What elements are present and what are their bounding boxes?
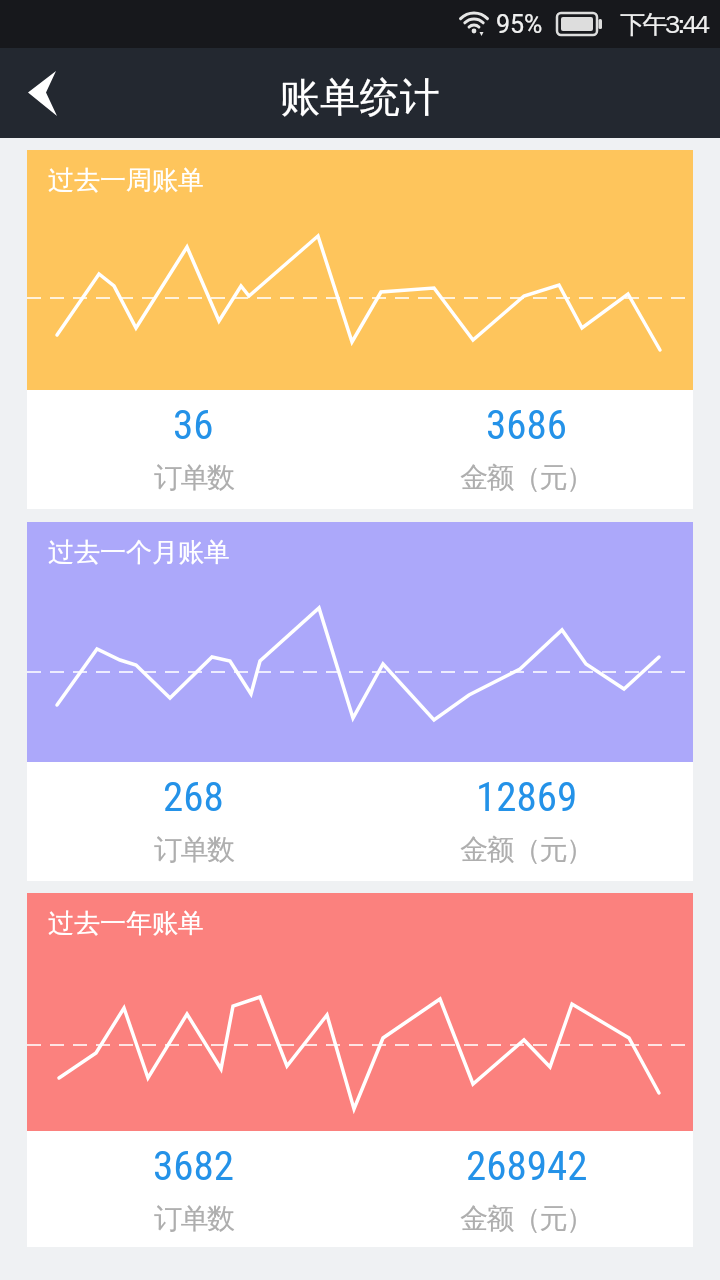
staticText: 36 xyxy=(173,401,214,449)
staticText: 订单数 xyxy=(154,460,234,495)
staticText: 过去一年账单 xyxy=(48,907,204,940)
staticText: 金额（元） xyxy=(460,460,593,495)
staticText: 95% xyxy=(496,10,543,39)
staticText: 过去一周账单 xyxy=(48,164,204,197)
staticText: 268942 xyxy=(466,1142,588,1190)
staticText: 订单数 xyxy=(154,832,234,867)
staticText: 下午3:44 xyxy=(620,9,708,40)
staticText: 账单统计 xyxy=(280,72,440,122)
staticText: 订单数 xyxy=(154,1201,234,1236)
staticText: 金额（元） xyxy=(460,832,593,867)
button[interactable]: 过去一个月账单 xyxy=(27,522,693,881)
staticText: 3682 xyxy=(153,1142,234,1190)
button[interactable]: 过去一周账单 xyxy=(27,150,693,509)
staticText: 3686 xyxy=(486,401,567,449)
staticText: 268 xyxy=(163,773,224,821)
button[interactable] xyxy=(19,69,67,117)
staticText: 12869 xyxy=(476,773,578,821)
staticText: 过去一个月账单 xyxy=(48,536,230,569)
staticText: 金额（元） xyxy=(460,1201,593,1236)
button[interactable]: 过去一年账单 xyxy=(27,893,693,1247)
